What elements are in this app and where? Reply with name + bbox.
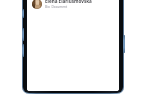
button[interactable]: Volume button xyxy=(22,9,24,18)
staticText: Bio Document xyxy=(45,5,68,9)
button[interactable]: Power button xyxy=(123,35,125,53)
button[interactable]: Volume button xyxy=(22,44,24,57)
button[interactable]: Profile photo xyxy=(32,0,42,9)
button[interactable]: Volume button xyxy=(22,28,24,41)
button[interactable]: Profile photo xyxy=(27,0,119,10)
staticText: Elena Elariusmovska xyxy=(45,0,92,4)
